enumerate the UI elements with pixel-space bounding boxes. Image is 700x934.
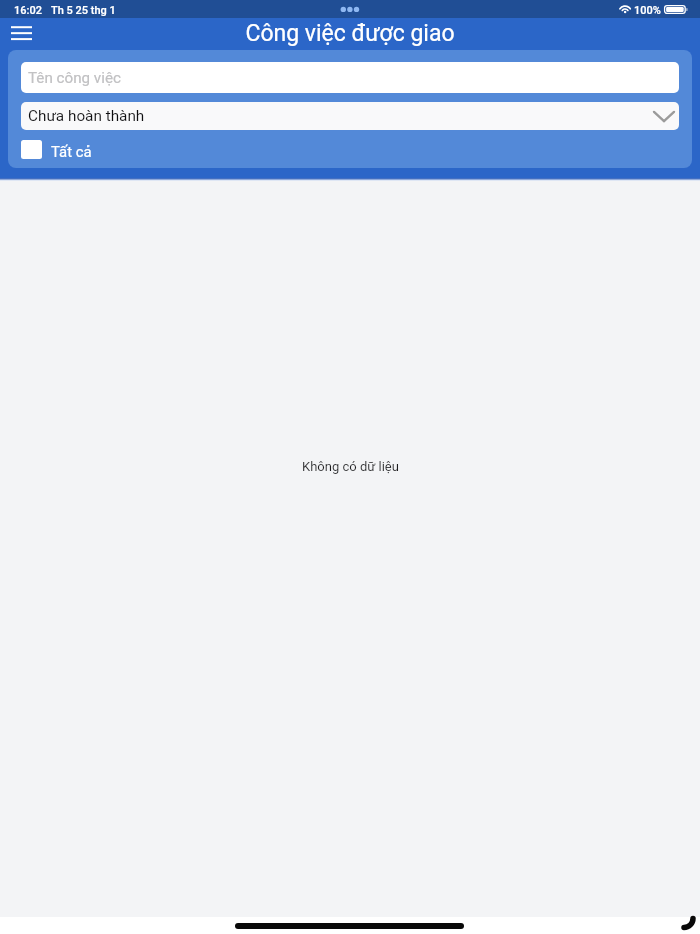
staticText: 100%: [634, 4, 661, 17]
staticText: Không có dữ liệu: [302, 459, 399, 474]
staticText: 16:02: [14, 4, 42, 17]
staticText: Tên công việc: [28, 69, 121, 87]
staticText: Th 5 25 thg 1: [51, 4, 116, 17]
button[interactable]: Chưa hoàn thành: [21, 102, 679, 130]
button[interactable]: Tên công việc: [21, 62, 679, 93]
button[interactable]: Menu: [7, 19, 35, 47]
staticText: Công việc được giao: [0, 20, 700, 47]
button[interactable]: Tất cả: [21, 140, 92, 159]
staticText: Tất cả: [51, 143, 92, 160]
staticText: Chưa hoàn thành: [28, 107, 145, 125]
